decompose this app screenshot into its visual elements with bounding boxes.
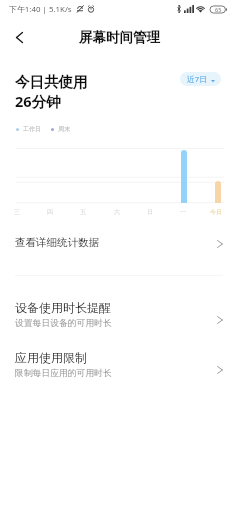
- staticText: 工作日: [23, 125, 41, 133]
- staticText: 今日共使用: [15, 73, 88, 91]
- staticText: 65: [215, 6, 222, 13]
- staticText: 设置每日设备的可用时长: [15, 318, 112, 329]
- staticText: 设备使用时长提醒: [15, 300, 111, 315]
- staticText: 一: [180, 208, 186, 216]
- button[interactable]: 应用使用限制: [0, 345, 238, 393]
- staticText: 三: [14, 208, 20, 216]
- button[interactable]: 近7日: [180, 72, 221, 86]
- button[interactable]: Back: [7, 21, 238, 53]
- staticText: 四: [47, 208, 53, 216]
- staticText: 周末: [58, 125, 70, 133]
- staticText: 六: [114, 208, 120, 216]
- staticText: 日: [147, 208, 153, 216]
- staticText: 五: [80, 208, 86, 216]
- staticText: 应用使用限制: [15, 350, 87, 365]
- button[interactable]: 设备使用时长提醒: [0, 295, 238, 343]
- staticText: 屏幕时间管理: [79, 29, 160, 46]
- staticText: 下午1:40 | 5.1K/s: [9, 4, 72, 15]
- staticText: 查看详细统计数据: [15, 236, 99, 249]
- staticText: 今日: [210, 208, 222, 216]
- staticText: 限制每日应用的可用时长: [15, 368, 112, 379]
- staticText: 近7日: [187, 74, 208, 85]
- staticText: 26分钟: [15, 91, 61, 111]
- button[interactable]: 查看详细统计数据: [0, 226, 238, 258]
